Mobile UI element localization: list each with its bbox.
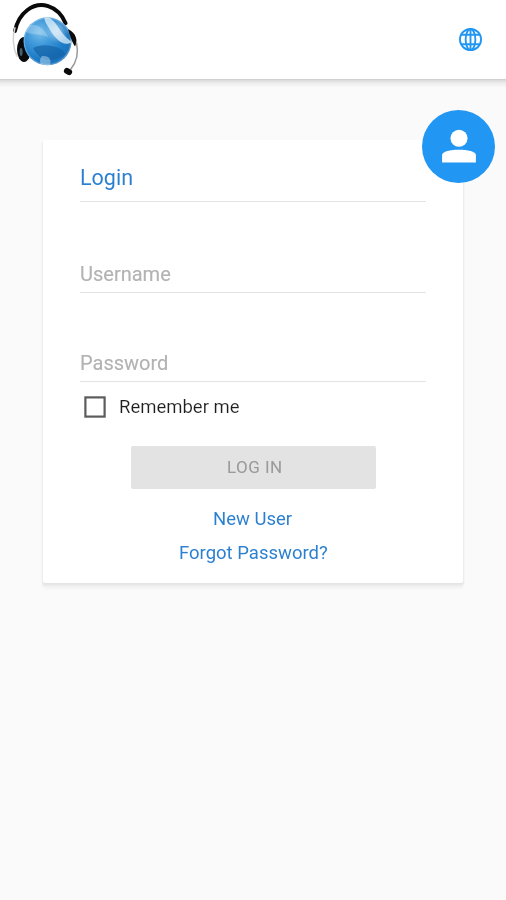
- button[interactable]: Forgot Password?: [43, 541, 463, 565]
- button[interactable]: New User: [43, 507, 463, 531]
- button[interactable]: Password: [80, 342, 426, 382]
- button[interactable]: Remember me: [84, 391, 240, 423]
- button[interactable]: LOG IN: [131, 446, 376, 489]
- staticText: Password: [80, 351, 169, 374]
- staticText: Username: [80, 262, 171, 285]
- staticText: LOG IN: [227, 457, 283, 477]
- button[interactable]: Change language: [447, 16, 493, 62]
- staticText: New User: [213, 508, 293, 530]
- staticText: Remember me: [119, 396, 240, 418]
- staticText: Forgot Password?: [179, 542, 328, 564]
- button[interactable]: Username: [80, 253, 426, 293]
- button[interactable]: Account: [422, 110, 495, 183]
- staticText: Login: [80, 165, 134, 190]
